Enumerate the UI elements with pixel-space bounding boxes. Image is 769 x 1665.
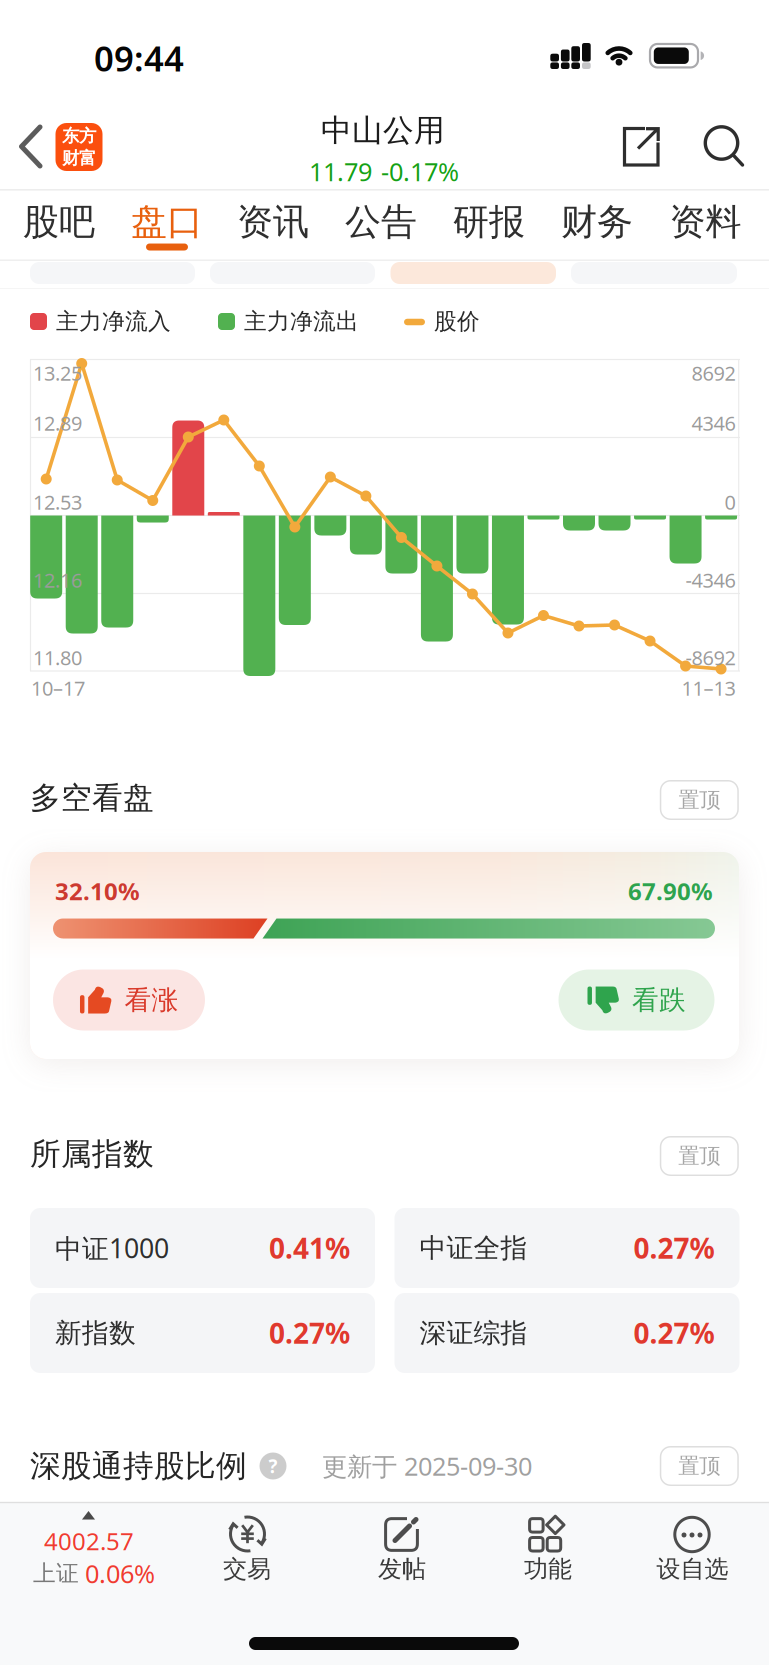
staticText: 上证: [33, 1560, 79, 1587]
staticText: 4002.57: [44, 1525, 134, 1557]
staticText: 13.25: [33, 360, 82, 386]
staticText: 研报: [453, 200, 525, 244]
staticText: 0.06%: [85, 1557, 155, 1590]
button[interactable]: 中证1000: [30, 1208, 375, 1288]
staticText: 盘口: [131, 200, 203, 244]
button[interactable]: 看涨: [53, 969, 205, 1030]
staticText: 设自选: [656, 1554, 728, 1584]
staticText: 交易: [223, 1554, 271, 1584]
button[interactable]: 深证综指: [394, 1293, 739, 1373]
button[interactable]: 置顶: [660, 1447, 738, 1485]
staticText: 32.10%: [55, 875, 140, 907]
staticText: 0.27%: [633, 1314, 714, 1352]
staticText: 0: [724, 489, 735, 515]
staticText: 67.90%: [628, 875, 713, 907]
staticText: 置顶: [678, 1453, 720, 1479]
button[interactable]: 研报: [443, 194, 535, 250]
staticText: 12.89: [33, 410, 82, 436]
staticText: 11.79: [309, 155, 372, 188]
staticText: 11–13: [681, 675, 735, 701]
button[interactable]: 交易: [207, 1502, 287, 1590]
staticText: 0.41%: [269, 1229, 350, 1267]
button[interactable]: 公告: [335, 194, 427, 250]
staticText: 深股通持股比例: [30, 1447, 247, 1485]
staticText: 多空看盘: [30, 779, 154, 817]
staticText: 中证1000: [55, 1230, 169, 1266]
button[interactable]: 资料: [659, 194, 751, 250]
staticText: 10–17: [31, 675, 85, 701]
staticText: 中证全指: [419, 1232, 527, 1264]
staticText: 财务: [561, 200, 633, 244]
staticText: 0.27%: [269, 1314, 350, 1352]
staticText: 财富: [62, 147, 96, 169]
staticText: 东方: [62, 125, 96, 146]
button[interactable]: 股吧: [13, 194, 105, 250]
staticText: 发帖: [378, 1554, 426, 1584]
button[interactable]: Help: [259, 1452, 287, 1480]
staticText: 11.80: [33, 644, 82, 671]
button[interactable]: 置顶: [660, 781, 738, 819]
staticText: 主力净流出: [244, 308, 359, 335]
button[interactable]: 上证指数: [0, 1502, 190, 1592]
staticText: 置顶: [678, 1143, 720, 1169]
staticText: 4346: [691, 410, 735, 436]
button[interactable]: 功能: [508, 1502, 588, 1590]
button[interactable]: 置顶: [660, 1137, 738, 1175]
button[interactable]: 设自选: [652, 1502, 732, 1590]
staticText: 资讯: [237, 200, 309, 244]
staticText: ?: [268, 1454, 277, 1478]
button[interactable]: Search: [697, 119, 751, 175]
staticText: 8692: [691, 360, 735, 386]
button[interactable]: Share: [615, 120, 667, 174]
button[interactable]: 新指数: [30, 1293, 375, 1373]
staticText: 深证综指: [419, 1317, 527, 1349]
staticText: -0.17%: [381, 155, 459, 188]
staticText: -4346: [685, 567, 735, 593]
staticText: 公告: [345, 200, 417, 244]
staticText: 中山公用: [321, 112, 445, 149]
button[interactable]: 发帖: [362, 1502, 442, 1590]
button[interactable]: 财务: [551, 194, 643, 250]
button[interactable]: 中证全指: [394, 1208, 739, 1288]
staticText: 12.16: [33, 567, 82, 593]
staticText: -8692: [685, 644, 735, 671]
staticText: 更新于 2025-09-30: [322, 1449, 532, 1483]
staticText: 资料: [669, 200, 741, 244]
staticText: 股价: [434, 308, 480, 335]
staticText: 看跌: [632, 984, 686, 1016]
button[interactable]: Back: [11, 117, 51, 177]
button[interactable]: 选项: [390, 262, 556, 284]
staticText: 看涨: [124, 984, 178, 1016]
staticText: 新指数: [55, 1317, 136, 1349]
staticText: 0.27%: [633, 1229, 714, 1267]
staticText: 主力净流入: [56, 308, 171, 335]
staticText: 股吧: [23, 200, 95, 244]
button[interactable]: 看跌: [558, 969, 714, 1030]
button[interactable]: 东方财富: [55, 123, 102, 171]
button[interactable]: 资讯: [227, 194, 319, 250]
staticText: 功能: [524, 1554, 572, 1584]
staticText: 置顶: [678, 787, 720, 813]
staticText: 所属指数: [30, 1135, 154, 1173]
staticText: 09:44: [94, 35, 184, 81]
staticText: 12.53: [33, 489, 82, 515]
button[interactable]: 盘口: [121, 194, 213, 250]
